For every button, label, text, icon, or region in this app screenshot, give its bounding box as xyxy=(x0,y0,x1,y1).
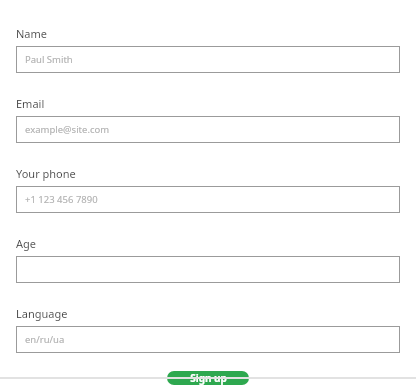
staticText: Email xyxy=(16,96,45,111)
staticText: example@site.com xyxy=(25,123,110,136)
staticText: Paul Smith xyxy=(25,53,73,66)
button[interactable]: example@site.com xyxy=(16,116,400,143)
staticText: Name xyxy=(16,26,48,41)
staticText: Your phone xyxy=(16,166,76,181)
button[interactable] xyxy=(16,256,400,283)
staticText: Language xyxy=(16,306,68,321)
staticText: Age xyxy=(16,236,36,251)
button[interactable]: en/ru/ua xyxy=(16,326,400,353)
button[interactable]: +1 123 456 7890 xyxy=(16,186,400,213)
staticText: Sign up xyxy=(190,371,227,385)
staticText: en/ru/ua xyxy=(25,333,65,346)
staticText: +1 123 456 7890 xyxy=(25,193,98,206)
button[interactable]: Paul Smith xyxy=(16,46,400,73)
button[interactable]: Sign up xyxy=(167,371,249,385)
